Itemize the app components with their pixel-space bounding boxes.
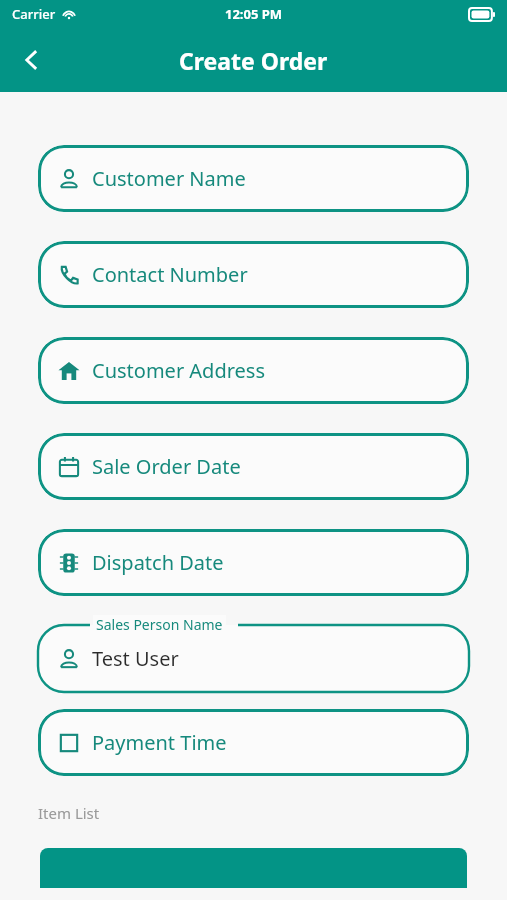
button[interactable] xyxy=(40,848,467,888)
staticText: Customer Address xyxy=(92,357,266,384)
staticText: Test User xyxy=(92,645,179,672)
button[interactable]: Payment Time xyxy=(38,709,469,776)
staticText: Customer Name xyxy=(92,165,246,192)
staticText: 12:05 PM xyxy=(225,5,283,23)
button[interactable]: Contact Number xyxy=(38,241,469,308)
button[interactable]: Dispatch Date xyxy=(38,529,469,596)
staticText: Dispatch Date xyxy=(92,549,224,576)
staticText: Item List xyxy=(38,803,100,823)
staticText: Carrier xyxy=(12,5,56,23)
button[interactable]: Customer Name xyxy=(38,145,469,212)
staticText: Sales Person Name xyxy=(96,615,223,634)
staticText: Contact Number xyxy=(92,261,248,288)
staticText: Create Order xyxy=(179,45,328,76)
button[interactable]: Sale Order Date xyxy=(38,433,469,500)
staticText: Sale Order Date xyxy=(92,453,241,480)
button[interactable]: Test User xyxy=(57,625,469,692)
staticText: Payment Time xyxy=(92,729,227,756)
button[interactable]: Customer Address xyxy=(38,337,469,404)
button[interactable]: Back xyxy=(8,36,56,84)
